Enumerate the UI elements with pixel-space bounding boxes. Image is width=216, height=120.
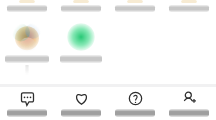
button[interactable]: [162, 0, 216, 16]
button[interactable]: [108, 0, 162, 16]
button[interactable]: [54, 0, 108, 16]
button[interactable]: [54, 22, 108, 63]
button[interactable]: [0, 22, 54, 75]
button[interactable]: Favorites: [54, 87, 108, 120]
button[interactable]: Message: [0, 87, 54, 120]
button[interactable]: [0, 0, 54, 16]
button[interactable]: Help and feedback: [108, 87, 162, 120]
button[interactable]: Add contact: [162, 87, 216, 120]
